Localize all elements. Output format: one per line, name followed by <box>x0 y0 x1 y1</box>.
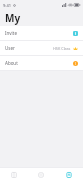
button[interactable]: My <box>55 168 83 182</box>
staticText: 9:41 <box>3 3 11 8</box>
staticText: Invite <box>5 30 17 36</box>
button[interactable]: User <box>0 41 83 55</box>
staticText: HSK Class <box>53 46 71 51</box>
button[interactable]: Invite <box>0 26 83 40</box>
button[interactable]: About <box>0 56 83 70</box>
staticText: My <box>5 11 21 25</box>
button[interactable]: Home <box>0 168 27 182</box>
staticText: User <box>5 45 15 51</box>
staticText: About <box>5 60 18 66</box>
button[interactable]: Discover <box>27 168 55 182</box>
